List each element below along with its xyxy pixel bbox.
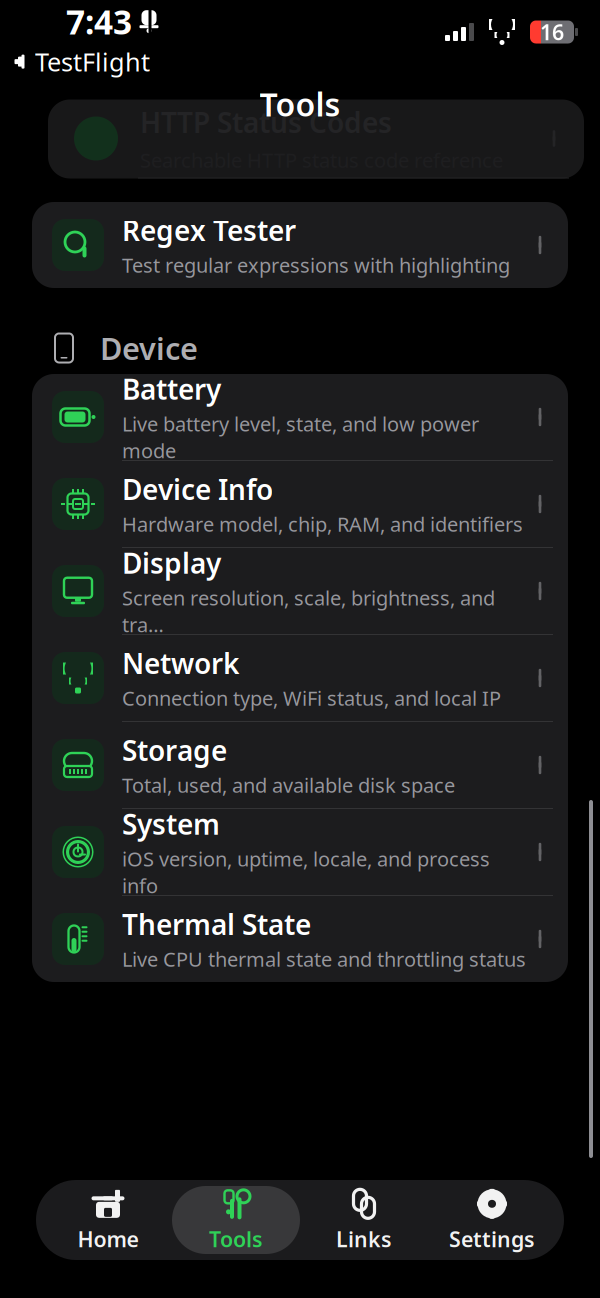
staticText: Network <box>122 645 239 682</box>
staticText: Tools <box>209 1225 263 1253</box>
staticText: Regex Tester <box>122 212 296 249</box>
staticText: Test regular expressions with highlighti… <box>122 252 510 278</box>
button[interactable]: Network <box>32 635 568 722</box>
button[interactable]: Links <box>300 1186 428 1254</box>
staticText: Device <box>100 328 198 368</box>
staticText: Storage <box>122 732 227 769</box>
staticText: Tools <box>259 83 340 125</box>
staticText: Total, used, and available disk space <box>122 772 455 798</box>
staticText: Battery <box>122 370 221 407</box>
staticText: Live CPU thermal state and throttling st… <box>122 946 526 972</box>
button[interactable]: Thermal State <box>32 896 568 982</box>
button[interactable]: Tools <box>172 1186 300 1254</box>
staticText: Links <box>336 1225 392 1253</box>
staticText: Display <box>122 544 221 581</box>
staticText: 7:43 <box>66 0 132 44</box>
staticText: Home <box>77 1225 138 1253</box>
button[interactable]: Storage <box>32 722 568 809</box>
staticText: Settings <box>449 1225 535 1253</box>
button[interactable]: Settings <box>428 1186 556 1254</box>
staticText: Thermal State <box>122 906 311 943</box>
button[interactable]: Home <box>44 1186 172 1254</box>
staticText: iOS version, uptime, locale, and process… <box>122 845 490 899</box>
button[interactable]: Display <box>32 548 568 635</box>
staticText: Screen resolution, scale, brightness, an… <box>122 584 495 638</box>
staticText: TestFlight <box>35 45 150 78</box>
button[interactable]: Battery <box>32 374 568 461</box>
staticText: 16 <box>540 18 564 46</box>
button[interactable]: Device Info <box>32 461 568 548</box>
staticText: Hardware model, chip, RAM, and identifie… <box>122 511 523 537</box>
button[interactable]: System <box>32 809 568 896</box>
staticText: Device Info <box>122 471 273 508</box>
staticText: Connection type, WiFi status, and local … <box>122 685 501 711</box>
button[interactable]: Regex Tester <box>32 202 568 288</box>
staticText: System <box>122 805 220 842</box>
staticText: HTTP Status Codes <box>140 104 392 141</box>
staticText: Live battery level, state, and low power… <box>122 410 479 464</box>
